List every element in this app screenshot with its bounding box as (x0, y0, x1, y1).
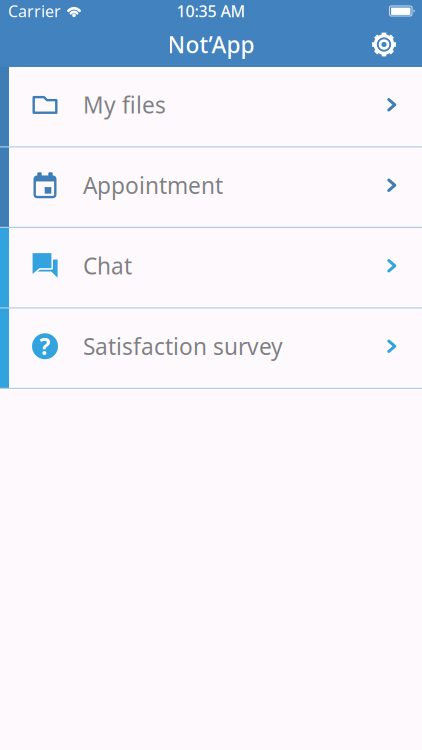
button[interactable]: Appointment (0, 147, 422, 228)
staticText: Not’App (167, 29, 254, 59)
staticText: ? (39, 331, 50, 361)
button[interactable]: ? (0, 308, 422, 389)
staticText: Carrier (8, 0, 61, 22)
button[interactable]: Settings (371, 31, 422, 57)
staticText: My files (83, 90, 166, 120)
staticText: 10:35 AM (176, 0, 245, 22)
staticText: Chat (83, 251, 132, 281)
button[interactable]: My files (0, 67, 422, 147)
staticText: Appointment (83, 170, 223, 200)
button[interactable]: Chat (0, 228, 422, 308)
staticText: Satisfaction survey (83, 331, 283, 361)
